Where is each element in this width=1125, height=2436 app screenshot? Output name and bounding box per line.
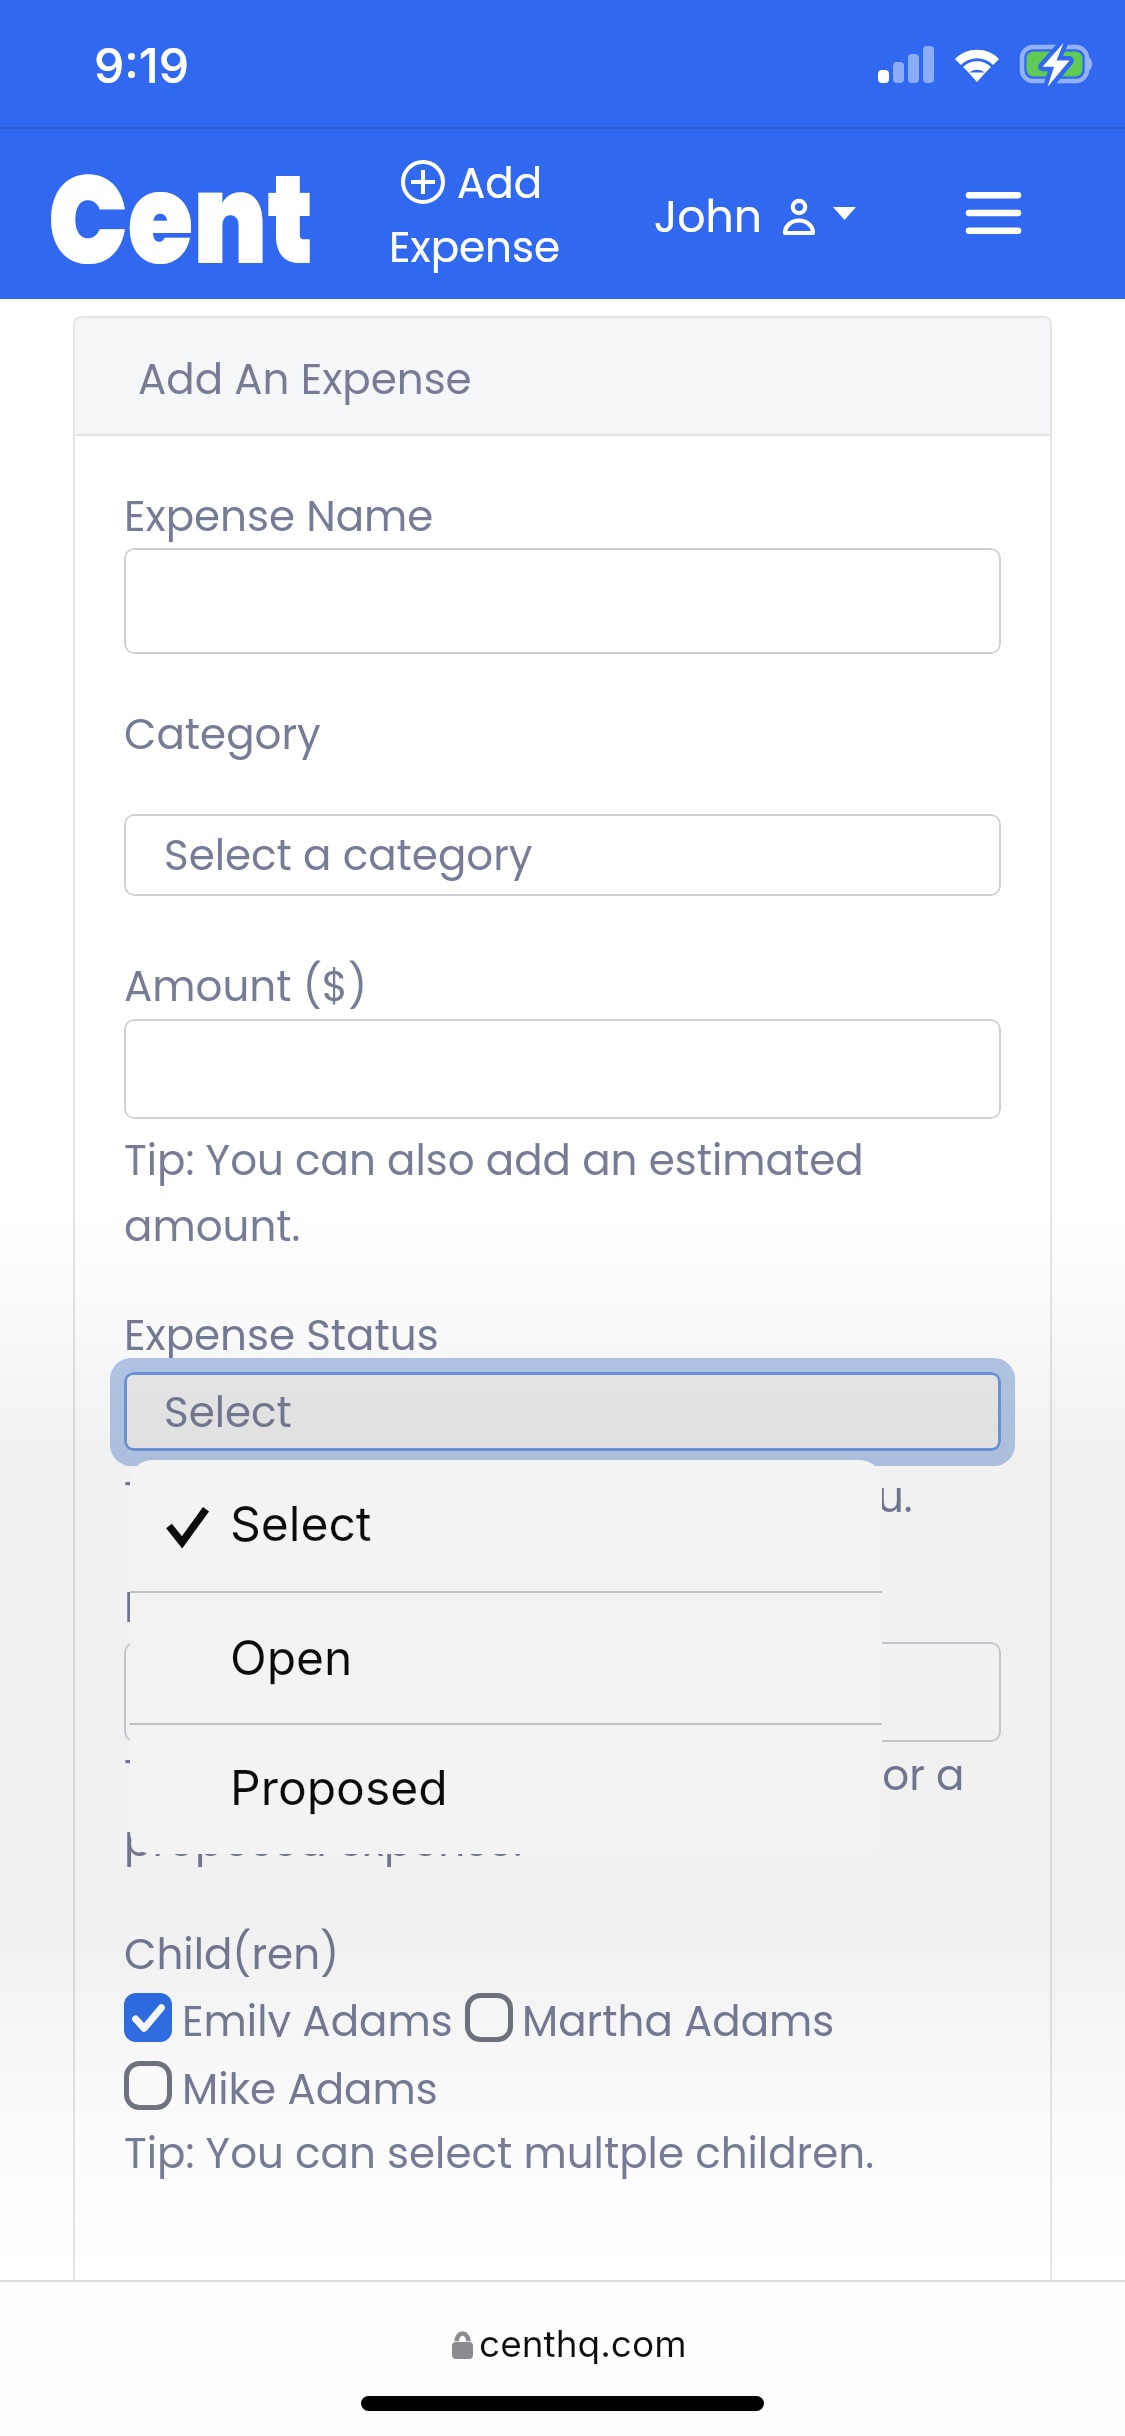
staticText: Proposed (230, 1758, 448, 1816)
button[interactable]: Select (110, 1358, 1015, 1466)
staticText: Select (164, 1379, 292, 1445)
staticText: Emily Adams (182, 1988, 453, 2037)
staticText: Select a category (164, 822, 533, 888)
staticText: Add An Expense (138, 346, 472, 412)
button[interactable]: Option (130, 1591, 882, 1723)
staticText: John (654, 186, 762, 248)
staticText: Amount ($) (124, 953, 367, 1019)
staticText: Add (457, 154, 543, 213)
staticText: Expense Date (124, 1574, 406, 1640)
staticText: Child(ren) (124, 1921, 340, 1987)
staticText: Tip: You can change the status menu. (124, 1464, 913, 1530)
staticText: Expense Name (124, 483, 434, 549)
button[interactable]: Option (130, 1460, 882, 1591)
staticText: Tip: Open means an active expense or a p… (124, 1742, 965, 1874)
staticText: Category (124, 701, 321, 767)
button[interactable] (124, 548, 1001, 654)
staticText: 9:19 (94, 36, 189, 94)
staticText: Select (230, 1494, 372, 1552)
button[interactable]: Select a category (124, 814, 1001, 896)
staticText: Expense Status (124, 1302, 439, 1368)
staticText: Martha Adams (522, 1988, 835, 2037)
button[interactable]: Option (130, 1723, 882, 1854)
button[interactable]: centhq.com (452, 2323, 687, 2368)
staticText: Tip: You can also add an estimated amoun… (124, 1127, 864, 1259)
button[interactable]: Cent (48, 133, 314, 303)
button[interactable]: Martha Adams (465, 1993, 846, 2042)
button[interactable]: Add (380, 147, 580, 287)
button[interactable]: Emily Adams (124, 1993, 506, 2042)
button[interactable] (124, 1019, 1001, 1119)
staticText: Open (230, 1628, 353, 1686)
staticText: Tip: You can select multple children. (124, 2120, 874, 2186)
button[interactable]: Mike Adams (124, 2061, 506, 2110)
button[interactable]: Menu (942, 169, 1038, 269)
staticText: Mike Adams (182, 2056, 438, 2105)
button[interactable]: John (640, 169, 875, 269)
staticText: Expense (389, 218, 560, 277)
button[interactable] (124, 1642, 1001, 1742)
staticText: centhq.com (479, 2321, 687, 2366)
